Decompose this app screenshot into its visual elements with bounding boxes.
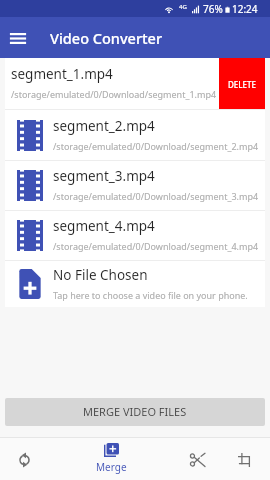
staticText: /storage/emulated/0/Download/segment_4.m…: [53, 240, 259, 252]
staticText: DELETE: [228, 79, 256, 90]
button[interactable]: Convert: [0, 438, 48, 480]
staticText: segment_4.mp4: [53, 217, 155, 235]
staticText: 76%: [203, 2, 223, 16]
staticText: Video Converter: [50, 28, 163, 48]
staticText: Merge: [96, 460, 127, 474]
button[interactable]: Open navigation drawer: [1, 21, 35, 55]
button[interactable]: Cut: [174, 438, 221, 480]
button[interactable]: No File Chosen: [5, 261, 265, 307]
button[interactable]: MERGE VIDEO FILES: [5, 398, 265, 426]
staticText: /storage/emulated/0/Download/segment_2.m…: [53, 140, 259, 152]
button[interactable]: segment_3.mp4: [5, 161, 265, 210]
staticText: No File Chosen: [53, 266, 148, 284]
button[interactable]: DELETE: [219, 58, 265, 109]
staticText: segment_3.mp4: [53, 167, 155, 185]
button[interactable]: segment_4.mp4: [5, 211, 265, 260]
staticText: segment_1.mp4: [11, 65, 113, 83]
button[interactable]: segment_2.mp4: [5, 110, 265, 160]
staticText: /storage/emulated/0/Download/segment_1.m…: [11, 88, 217, 100]
button[interactable]: Merge: [48, 438, 174, 480]
staticText: Tap here to choose a video file on your …: [53, 289, 248, 301]
button[interactable]: Crop: [221, 438, 270, 480]
staticText: /storage/emulated/0/Download/segment_3.m…: [53, 190, 259, 202]
staticText: 12:24: [232, 2, 258, 16]
staticText: MERGE VIDEO FILES: [83, 404, 187, 419]
staticText: 4G: [179, 3, 187, 11]
staticText: segment_2.mp4: [53, 117, 155, 135]
